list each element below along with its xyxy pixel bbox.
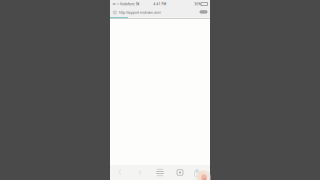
button[interactable]: Share [190,165,210,179]
button[interactable]: Tabs [170,165,190,179]
staticText: http://support.mobivan.com/ [119,10,161,14]
staticText: 4:41 PM [153,2,166,6]
staticText: Vodafone IN [120,2,139,6]
button[interactable]: http://support.mobivan.com/ [110,8,210,17]
staticText: 36% [194,2,200,6]
button[interactable]: Bookmarks [150,165,170,179]
